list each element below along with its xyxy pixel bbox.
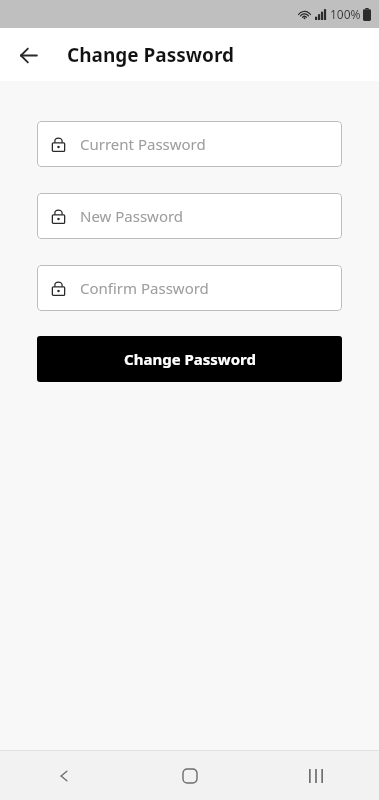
staticText: Current Password (80, 134, 206, 154)
button[interactable]: Change Password (37, 336, 342, 382)
button[interactable]: New Password (37, 193, 342, 239)
button[interactable]: Confirm Password (37, 265, 342, 311)
button[interactable]: Back (0, 751, 127, 800)
button[interactable]: Home (127, 751, 253, 800)
staticText: New Password (80, 206, 184, 226)
staticText: Confirm Password (80, 278, 209, 298)
button[interactable]: Back (8, 35, 48, 75)
staticText: 100% (330, 6, 361, 22)
staticText: Change Password (67, 42, 235, 68)
button[interactable]: Recent apps (253, 751, 379, 800)
button[interactable]: Current Password (37, 121, 342, 167)
staticText: Change Password (124, 349, 256, 369)
